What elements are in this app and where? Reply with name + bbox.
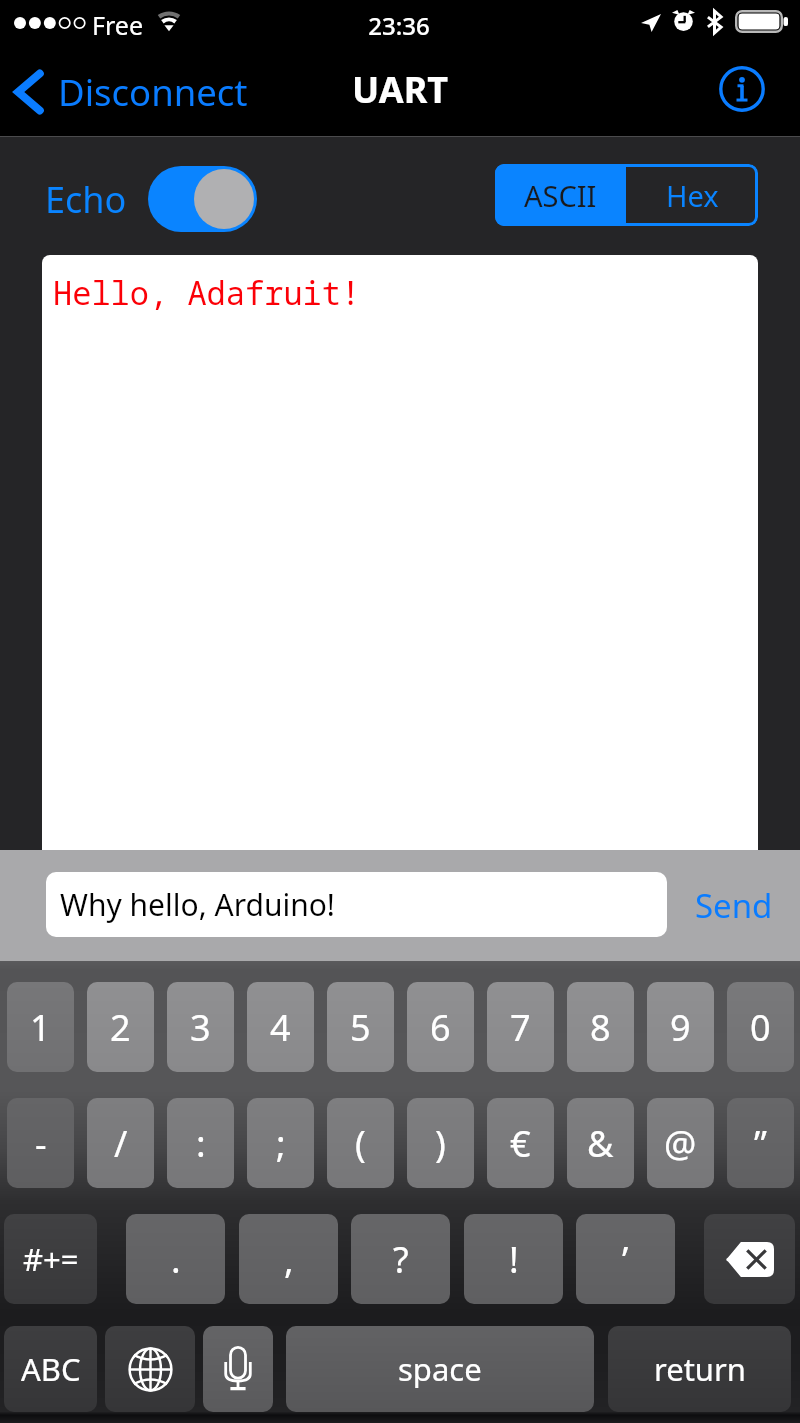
staticText: ) — [435, 1119, 446, 1168]
staticText: 1 — [30, 1003, 51, 1052]
button[interactable]: 9 — [647, 982, 714, 1072]
button[interactable]: ” — [727, 1098, 794, 1188]
staticText: 4 — [270, 1003, 291, 1052]
staticText: 0 — [750, 1003, 771, 1052]
button[interactable]: : — [167, 1098, 234, 1188]
button[interactable]: Dictation — [203, 1326, 273, 1412]
button[interactable]: ? — [351, 1214, 450, 1304]
button[interactable]: Backspace — [704, 1214, 795, 1304]
staticText: - — [35, 1119, 47, 1168]
button[interactable]: Hex — [626, 164, 758, 226]
button[interactable]: Info — [716, 63, 768, 115]
staticText: ABC — [21, 1348, 81, 1390]
staticText: 5 — [350, 1003, 371, 1052]
button[interactable]: 1 — [7, 982, 74, 1072]
staticText: ? — [393, 1235, 409, 1284]
button[interactable]: return — [608, 1326, 791, 1412]
staticText: . — [171, 1235, 181, 1284]
button[interactable]: ABC — [4, 1326, 97, 1412]
staticText: Hello, Adafruit! — [53, 271, 361, 315]
button[interactable]: Hello, Adafruit! — [42, 255, 758, 850]
staticText: 2 — [110, 1003, 131, 1052]
button[interactable]: . — [126, 1214, 225, 1304]
staticText: / — [114, 1119, 128, 1168]
button[interactable]: 7 — [487, 982, 554, 1072]
staticText: Why hello, Arduino! — [60, 884, 335, 925]
staticText: #+= — [23, 1238, 79, 1280]
button[interactable]: Echo toggle — [148, 166, 257, 232]
button[interactable]: #+= — [4, 1214, 97, 1304]
button[interactable]: 0 — [727, 982, 794, 1072]
button[interactable]: , — [239, 1214, 338, 1304]
staticText: 23:36 — [349, 9, 449, 42]
staticText: 9 — [670, 1003, 691, 1052]
staticText: Free — [92, 8, 144, 42]
staticText: € — [510, 1119, 531, 1168]
staticText: ( — [355, 1119, 366, 1168]
button[interactable]: ) — [407, 1098, 474, 1188]
staticText: 8 — [590, 1003, 611, 1052]
button[interactable]: & — [567, 1098, 634, 1188]
staticText: Echo — [45, 175, 127, 224]
button[interactable]: 4 — [247, 982, 314, 1072]
button[interactable]: 3 — [167, 982, 234, 1072]
button[interactable]: Disconnect — [14, 46, 248, 137]
button[interactable]: ! — [464, 1214, 563, 1304]
button[interactable]: / — [87, 1098, 154, 1188]
button[interactable]: ASCII — [495, 164, 626, 226]
staticText: : — [196, 1119, 206, 1168]
staticText: & — [587, 1119, 614, 1168]
staticText: @ — [664, 1119, 697, 1168]
staticText: ; — [276, 1119, 286, 1168]
staticText: Disconnect — [58, 67, 248, 117]
staticText: , — [284, 1235, 294, 1284]
button[interactable]: ’ — [576, 1214, 675, 1304]
button[interactable]: Why hello, Arduino! — [46, 872, 667, 937]
staticText: ! — [509, 1235, 519, 1284]
button[interactable]: Next keyboard — [105, 1326, 195, 1412]
staticText: Send — [695, 883, 773, 928]
button[interactable]: ; — [247, 1098, 314, 1188]
staticText: UART — [300, 65, 500, 114]
button[interactable]: 6 — [407, 982, 474, 1072]
staticText: Hex — [666, 176, 719, 215]
staticText: ASCII — [524, 176, 597, 215]
button[interactable]: @ — [647, 1098, 714, 1188]
button[interactable]: space — [286, 1326, 594, 1412]
staticText: ’ — [622, 1235, 629, 1284]
button[interactable]: 5 — [327, 982, 394, 1072]
staticText: 7 — [510, 1003, 531, 1052]
staticText: 6 — [430, 1003, 451, 1052]
button[interactable]: 8 — [567, 982, 634, 1072]
button[interactable]: - — [7, 1098, 74, 1188]
staticText: return — [654, 1348, 746, 1390]
button[interactable]: Send — [667, 850, 800, 961]
button[interactable]: ( — [327, 1098, 394, 1188]
staticText: space — [398, 1348, 482, 1390]
staticText: 3 — [190, 1003, 211, 1052]
button[interactable]: € — [487, 1098, 554, 1188]
staticText: ” — [754, 1119, 767, 1168]
button[interactable]: 2 — [87, 982, 154, 1072]
